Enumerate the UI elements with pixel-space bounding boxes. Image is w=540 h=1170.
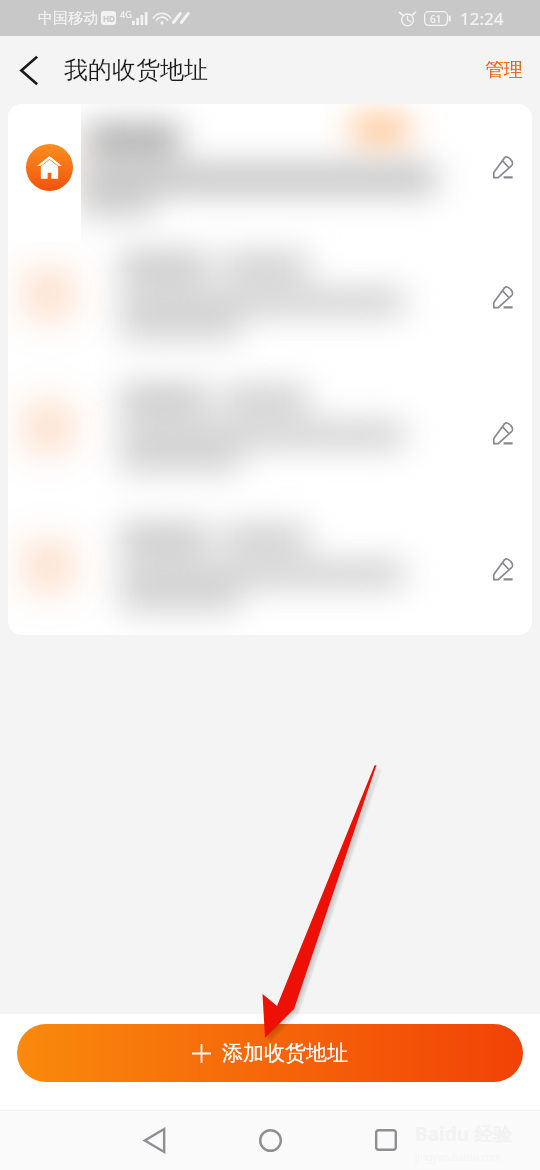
button[interactable]: Edit bbox=[8, 363, 532, 502]
button[interactable]: Edit bbox=[8, 502, 532, 635]
staticText: HD bbox=[103, 13, 115, 24]
button[interactable]: Home bbox=[246, 1116, 294, 1164]
staticText: 管理 bbox=[485, 58, 523, 82]
button[interactable]: Edit bbox=[479, 409, 527, 457]
staticText: 4G bbox=[120, 8, 132, 20]
staticText: 61 bbox=[430, 12, 442, 26]
button[interactable]: 添加收货地址 bbox=[17, 1024, 523, 1082]
staticText: 中国移动 bbox=[38, 9, 98, 28]
button[interactable]: Edit bbox=[479, 545, 527, 593]
button[interactable]: 管理 bbox=[467, 48, 540, 92]
button[interactable]: Edit bbox=[8, 104, 532, 230]
button[interactable]: Edit bbox=[8, 230, 532, 363]
staticText: 我的收货地址 bbox=[64, 55, 208, 85]
button[interactable]: Back bbox=[130, 1116, 178, 1164]
button[interactable]: Edit bbox=[479, 143, 527, 191]
staticText: 添加收货地址 bbox=[222, 1040, 348, 1066]
button[interactable]: Edit bbox=[479, 273, 527, 321]
staticText: Baidu 经验 bbox=[415, 1121, 512, 1147]
button[interactable]: Recents bbox=[362, 1116, 410, 1164]
button[interactable]: Back bbox=[0, 42, 56, 98]
staticText: 12:24 bbox=[460, 7, 504, 30]
